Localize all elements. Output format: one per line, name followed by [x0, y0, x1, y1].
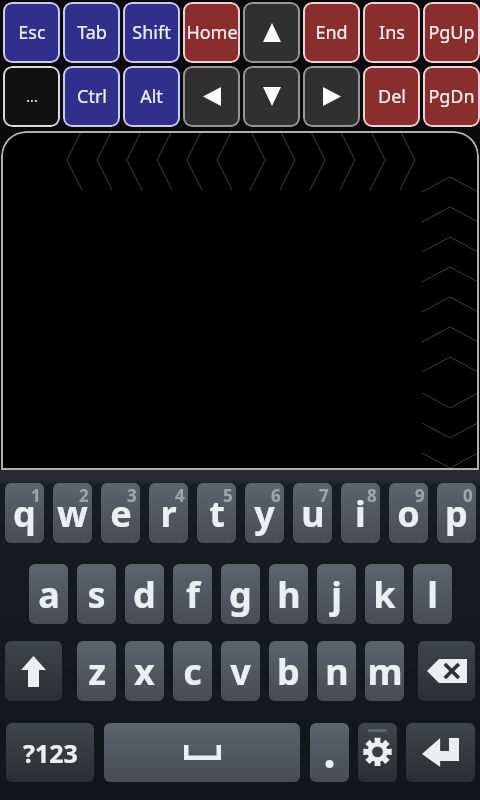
staticText: u: [301, 489, 325, 538]
button[interactable]: s: [77, 564, 116, 624]
button[interactable]: Space: [104, 723, 300, 782]
button[interactable]: Arrow left: [183, 66, 240, 127]
button[interactable]: Backspace: [418, 641, 475, 701]
button[interactable]: Tab: [63, 2, 120, 63]
staticText: y: [254, 489, 275, 538]
button[interactable]: Shift: [123, 2, 180, 63]
button[interactable]: h: [269, 564, 308, 624]
button[interactable]: PgDn: [423, 66, 480, 127]
staticText: i: [355, 489, 366, 538]
staticText: f: [186, 570, 200, 619]
staticText: d: [133, 570, 156, 619]
button[interactable]: 6: [245, 483, 284, 543]
staticText: Shift: [132, 20, 171, 45]
button[interactable]: Enter: [406, 723, 475, 782]
staticText: 2: [79, 484, 89, 507]
button[interactable]: k: [365, 564, 404, 624]
button[interactable]: 8: [341, 483, 380, 543]
button[interactable]: 4: [149, 483, 188, 543]
button[interactable]: 9: [389, 483, 428, 543]
staticText: Home: [186, 20, 238, 45]
staticText: Ins: [379, 20, 405, 45]
staticText: End: [315, 20, 348, 45]
button[interactable]: f: [173, 564, 212, 624]
button[interactable]: ?123: [6, 723, 94, 782]
staticText: PgUp: [428, 20, 475, 45]
button[interactable]: Shift: [5, 641, 62, 701]
staticText: Esc: [18, 20, 46, 45]
staticText: p: [445, 489, 468, 538]
button[interactable]: Home: [183, 2, 240, 63]
staticText: c: [183, 647, 202, 696]
button[interactable]: End: [303, 2, 360, 63]
staticText: x: [134, 647, 155, 696]
staticText: 6: [271, 484, 281, 507]
staticText: 9: [415, 484, 425, 507]
staticText: o: [397, 489, 420, 538]
button[interactable]: v: [221, 641, 260, 701]
staticText: e: [110, 489, 132, 538]
button[interactable]: 7: [293, 483, 332, 543]
button[interactable]: Arrow up: [243, 2, 300, 63]
button[interactable]: n: [317, 641, 356, 701]
button[interactable]: 5: [197, 483, 236, 543]
button[interactable]: 3: [101, 483, 140, 543]
staticText: g: [229, 570, 252, 619]
button[interactable]: 2: [53, 483, 92, 543]
button[interactable]: d: [125, 564, 164, 624]
button[interactable]: 0: [437, 483, 476, 543]
staticText: Ctrl: [77, 84, 107, 109]
button[interactable]: Settings: [358, 723, 397, 782]
staticText: r: [160, 489, 177, 538]
staticText: m: [367, 647, 403, 696]
staticText: 3: [127, 484, 137, 507]
button[interactable]: Del: [363, 66, 420, 127]
staticText: 7: [319, 484, 329, 507]
staticText: z: [88, 647, 106, 696]
button[interactable]: x: [125, 641, 164, 701]
staticText: q: [13, 489, 36, 538]
staticText: n: [325, 647, 349, 696]
button[interactable]: [1, 131, 479, 470]
button[interactable]: l: [413, 564, 452, 624]
staticText: w: [57, 489, 88, 538]
button[interactable]: Arrow right: [303, 66, 360, 127]
staticText: 8: [367, 484, 377, 507]
button[interactable]: c: [173, 641, 212, 701]
staticText: 1: [31, 484, 41, 507]
staticText: k: [373, 570, 396, 619]
button[interactable]: 1: [5, 483, 44, 543]
button[interactable]: Ins: [363, 2, 420, 63]
button[interactable]: Arrow down: [243, 66, 300, 127]
staticText: Del: [378, 84, 406, 109]
staticText: s: [87, 570, 106, 619]
staticText: 0: [463, 484, 473, 507]
staticText: ?123: [23, 736, 78, 770]
staticText: h: [277, 570, 301, 619]
staticText: j: [331, 570, 342, 619]
button[interactable]: z: [77, 641, 116, 701]
staticText: a: [38, 570, 60, 619]
staticText: Tab: [77, 20, 107, 45]
button[interactable]: Alt: [123, 66, 180, 127]
staticText: PgDn: [428, 84, 475, 109]
staticText: 5: [223, 484, 233, 507]
staticText: ...: [26, 87, 38, 106]
button[interactable]: g: [221, 564, 260, 624]
button[interactable]: PgUp: [423, 2, 480, 63]
button[interactable]: a: [29, 564, 68, 624]
button[interactable]: b: [269, 641, 308, 701]
staticText: v: [230, 647, 251, 696]
button[interactable]: m: [365, 641, 404, 701]
staticText: b: [277, 647, 300, 696]
staticText: 4: [175, 484, 185, 507]
button[interactable]: Ctrl: [63, 66, 120, 127]
button[interactable]: j: [317, 564, 356, 624]
staticText: Alt: [140, 84, 163, 109]
button[interactable]: Esc: [3, 2, 60, 63]
button[interactable]: ...: [3, 66, 60, 127]
staticText: l: [427, 570, 438, 619]
button[interactable]: Period: [310, 723, 349, 782]
staticText: t: [209, 489, 225, 538]
